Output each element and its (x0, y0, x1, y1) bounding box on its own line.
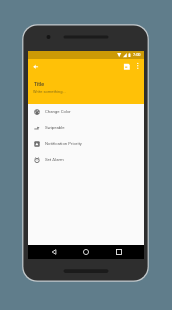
staticText: Notification Priority (45, 141, 82, 146)
button[interactable]: Home (78, 245, 94, 259)
button[interactable]: Back (46, 245, 62, 259)
staticText: Change Color (45, 109, 71, 114)
button[interactable]: Save (121, 61, 133, 73)
staticText: Set Alarm (45, 157, 64, 162)
staticText: Swipeable (45, 125, 65, 130)
button[interactable]: Change Color (28, 104, 144, 120)
staticText: 7:00 (133, 52, 141, 57)
staticText: Title (34, 81, 44, 87)
button[interactable]: Swipeable (28, 120, 144, 136)
staticText: Write something... (33, 89, 66, 94)
button[interactable]: Recent apps (111, 245, 127, 259)
button[interactable]: Back (30, 61, 42, 73)
button[interactable]: Set Alarm (28, 152, 144, 168)
button[interactable]: Notification Priority (28, 136, 144, 152)
button[interactable]: More options (132, 60, 144, 72)
